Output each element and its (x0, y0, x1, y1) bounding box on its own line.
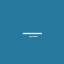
staticText: 8,432 steps (29, 35, 38, 37)
